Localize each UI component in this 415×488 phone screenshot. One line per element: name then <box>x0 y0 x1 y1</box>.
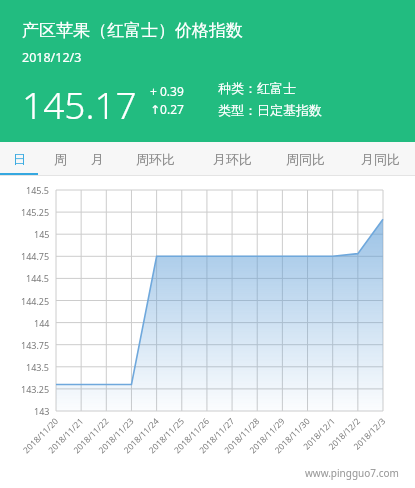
staticText: 2018/12/3 <box>22 49 82 66</box>
button[interactable]: 月 <box>78 142 116 176</box>
staticText: 145.17 <box>22 79 137 129</box>
button[interactable]: 日 <box>0 142 38 176</box>
button[interactable]: 周环比 <box>127 142 183 176</box>
staticText: 日 <box>13 151 26 167</box>
staticText: 产区苹果（红富士）价格指数 <box>22 20 243 41</box>
button[interactable]: 周同比 <box>277 142 333 176</box>
button[interactable]: 月环比 <box>204 142 260 176</box>
staticText: 周环比 <box>136 151 175 167</box>
staticText: www.pingguo7.com <box>305 466 399 480</box>
button[interactable]: 月同比 <box>352 142 408 176</box>
staticText: + 0.39 <box>150 83 184 99</box>
staticText: 月同比 <box>361 151 400 167</box>
staticText: 周同比 <box>286 151 325 167</box>
staticText: 类型：日定基指数 <box>218 102 322 118</box>
staticText: 种类：红富士 <box>218 80 296 96</box>
button[interactable]: 周 <box>41 142 79 176</box>
staticText: 周 <box>54 151 67 167</box>
staticText: 月环比 <box>213 151 252 167</box>
staticText: 月 <box>91 151 104 167</box>
staticText: ↑0.27 <box>150 101 184 117</box>
